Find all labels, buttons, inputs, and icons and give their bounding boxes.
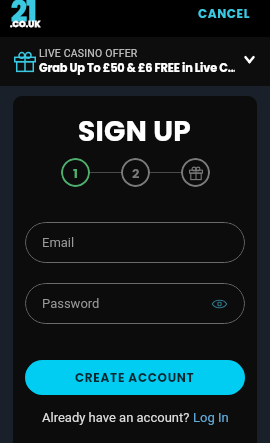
- staticText: Log In: [193, 410, 229, 425]
- button[interactable]: Email: [25, 222, 245, 263]
- staticText: Email: [42, 235, 75, 250]
- button[interactable]: CANCEL: [186, 0, 270, 30]
- button[interactable]: 2: [121, 158, 150, 187]
- staticText: 2: [132, 164, 140, 182]
- staticText: 1: [73, 164, 78, 182]
- button[interactable]: Password: [25, 283, 245, 324]
- button[interactable]: 1: [61, 158, 90, 187]
- button[interactable]: LIVE CASINO OFFER: [0, 37, 270, 86]
- staticText: CREATE ACCOUNT: [75, 369, 195, 386]
- staticText: .CO.UK: [10, 18, 41, 30]
- staticText: Grab Up To £50 & £6 FREE in Live C...: [39, 60, 235, 76]
- staticText: CANCEL: [198, 5, 250, 22]
- button[interactable]: Bonus step: [181, 158, 210, 187]
- other: Expand offer: [236, 46, 262, 72]
- staticText: Password: [42, 296, 100, 311]
- button[interactable]: Log In: [193, 410, 229, 425]
- button[interactable]: 21.co.uk home: [0, 0, 44, 30]
- staticText: Already have an account?: [42, 410, 193, 425]
- other: Show password: [208, 293, 230, 315]
- staticText: LIVE CASINO OFFER: [39, 47, 138, 59]
- staticText: 21: [11, 0, 36, 22]
- staticText: SIGN UP: [78, 112, 192, 151]
- button[interactable]: CREATE ACCOUNT: [25, 360, 245, 395]
